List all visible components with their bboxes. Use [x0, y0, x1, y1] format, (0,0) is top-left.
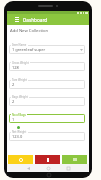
staticText: 2 — [12, 99, 15, 104]
staticText: 2 — [12, 82, 15, 87]
button[interactable]: Back — [23, 164, 33, 172]
staticText: Tare Weight — [12, 78, 27, 82]
button[interactable] — [9, 80, 85, 89]
staticText: 1 greenleaf super — [12, 47, 46, 52]
button[interactable]: Recents — [63, 164, 73, 172]
button[interactable] — [9, 132, 85, 141]
staticText: No of Bags — [12, 113, 26, 117]
button[interactable]: Delete — [35, 155, 60, 164]
staticText: Net Weight — [12, 130, 27, 134]
button[interactable]: Save — [62, 155, 87, 164]
staticText: Item Name — [12, 43, 27, 47]
staticText: Add New Collection — [10, 28, 49, 34]
button[interactable]: Menu — [12, 14, 21, 25]
staticText: 1 — [12, 117, 15, 122]
button[interactable]: Home — [43, 164, 53, 172]
button[interactable]: Reset — [8, 155, 33, 164]
button[interactable] — [9, 114, 85, 123]
button[interactable] — [9, 45, 85, 54]
staticText: Bags Weight — [12, 95, 28, 99]
staticText: Dashboard — [23, 17, 48, 23]
staticText: 123.0 — [12, 134, 23, 139]
staticText: Gross Weight — [12, 61, 29, 65]
staticText: 128 — [12, 65, 19, 70]
button[interactable] — [9, 62, 85, 71]
button[interactable] — [9, 97, 85, 106]
